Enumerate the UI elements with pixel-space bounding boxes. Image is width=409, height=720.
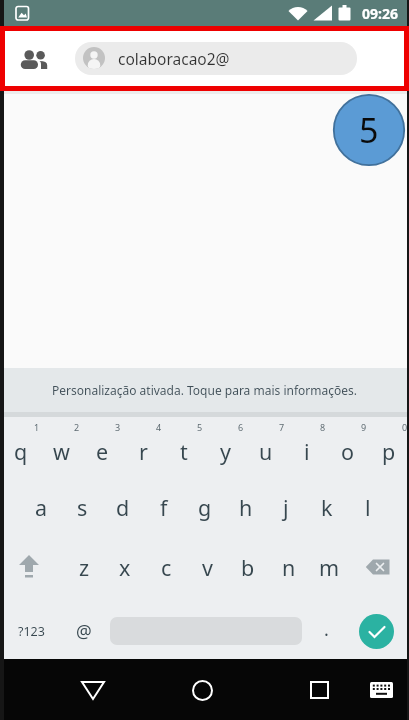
button[interactable]: h bbox=[226, 491, 266, 523]
staticText: 5 bbox=[197, 421, 203, 433]
staticText: colaboracao2@ bbox=[118, 48, 230, 69]
button[interactable]: c bbox=[146, 551, 186, 583]
button[interactable]: g bbox=[185, 491, 225, 523]
button[interactable]: f bbox=[144, 491, 184, 523]
button[interactable]: k bbox=[307, 491, 347, 523]
staticText: h bbox=[239, 493, 253, 522]
button[interactable]: l bbox=[348, 491, 388, 523]
button[interactable]: y bbox=[205, 435, 245, 467]
button[interactable]: e bbox=[82, 435, 122, 467]
staticText: j bbox=[283, 493, 289, 522]
button[interactable]: n bbox=[269, 551, 309, 583]
button[interactable]: Personalização ativada. Toque para mais … bbox=[0, 368, 409, 412]
button[interactable] bbox=[296, 669, 342, 711]
button[interactable]: @ bbox=[64, 613, 104, 649]
button[interactable]: ?123 bbox=[8, 613, 54, 649]
staticText: y bbox=[220, 437, 231, 466]
staticText: d bbox=[116, 493, 130, 522]
staticText: z bbox=[79, 553, 90, 582]
staticText: @ bbox=[76, 619, 92, 643]
staticText: 1 bbox=[34, 421, 40, 433]
staticText: f bbox=[160, 493, 168, 522]
button[interactable]: colaboracao2@ bbox=[75, 42, 357, 75]
staticText: w bbox=[53, 437, 70, 466]
staticText: i bbox=[304, 437, 310, 466]
staticText: x bbox=[119, 553, 131, 582]
button[interactable] bbox=[362, 672, 400, 708]
staticText: p bbox=[382, 437, 396, 466]
staticText: 09:26 bbox=[362, 4, 398, 23]
staticText: Personalização ativada. Toque para mais … bbox=[52, 382, 357, 398]
button[interactable] bbox=[70, 669, 116, 711]
button[interactable]: q bbox=[1, 435, 41, 467]
staticText: o bbox=[341, 437, 355, 466]
button[interactable]: u bbox=[246, 435, 286, 467]
button[interactable] bbox=[14, 44, 56, 76]
staticText: b bbox=[241, 553, 255, 582]
button[interactable]: o bbox=[328, 435, 368, 467]
button[interactable]: v bbox=[187, 551, 227, 583]
staticText: m bbox=[319, 553, 340, 582]
button[interactable]: t bbox=[164, 435, 204, 467]
staticText: g bbox=[198, 493, 212, 522]
staticText: k bbox=[321, 493, 333, 522]
button[interactable] bbox=[356, 547, 400, 587]
button[interactable]: x bbox=[105, 551, 145, 583]
button[interactable]: m bbox=[309, 551, 349, 583]
staticText: 6 bbox=[238, 421, 244, 433]
button[interactable]: . bbox=[310, 611, 342, 647]
button[interactable]: b bbox=[228, 551, 268, 583]
staticText: e bbox=[96, 437, 109, 466]
staticText: t bbox=[180, 437, 188, 466]
staticText: 9 bbox=[361, 421, 367, 433]
staticText: a bbox=[35, 493, 48, 522]
staticText: 3 bbox=[115, 421, 121, 433]
button[interactable]: s bbox=[62, 491, 102, 523]
staticText: v bbox=[202, 553, 213, 582]
button[interactable]: z bbox=[64, 551, 104, 583]
staticText: 7 bbox=[279, 421, 285, 433]
staticText: q bbox=[14, 437, 28, 466]
button[interactable]: j bbox=[266, 491, 306, 523]
staticText: 4 bbox=[156, 421, 162, 433]
staticText: r bbox=[139, 437, 148, 466]
staticText: s bbox=[77, 493, 88, 522]
staticText: l bbox=[365, 493, 371, 522]
button[interactable]: w bbox=[41, 435, 81, 467]
button[interactable]: d bbox=[103, 491, 143, 523]
staticText: 8 bbox=[320, 421, 326, 433]
staticText: n bbox=[282, 553, 296, 582]
staticText: c bbox=[161, 553, 172, 582]
staticText: 0 bbox=[402, 421, 408, 433]
staticText: ?123 bbox=[18, 623, 45, 640]
button[interactable]: i bbox=[287, 435, 327, 467]
button[interactable] bbox=[179, 669, 225, 711]
staticText: 2 bbox=[74, 421, 80, 433]
staticText: 5 bbox=[359, 107, 379, 153]
button[interactable] bbox=[7, 547, 51, 587]
staticText: u bbox=[259, 437, 273, 466]
staticText: . bbox=[324, 617, 329, 642]
button[interactable] bbox=[359, 614, 394, 649]
button[interactable]: r bbox=[123, 435, 163, 467]
button[interactable]: a bbox=[21, 491, 61, 523]
button[interactable]: p bbox=[369, 435, 409, 467]
